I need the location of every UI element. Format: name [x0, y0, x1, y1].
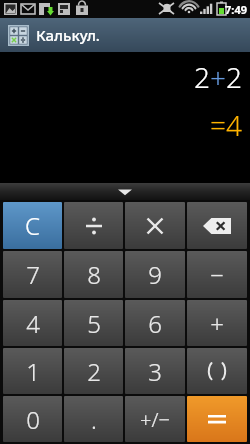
staticText: Калькул. — [36, 25, 100, 45]
staticText: − — [210, 258, 224, 291]
staticText: 3 — [148, 355, 162, 388]
button[interactable]: + — [187, 300, 247, 346]
button[interactable]: 1 — [3, 348, 62, 394]
button[interactable]: 4 — [3, 300, 62, 346]
staticText: 0 — [26, 403, 40, 436]
staticText: 6 — [148, 307, 162, 340]
staticText: 8 — [87, 258, 101, 291]
button[interactable]: +/− — [125, 396, 185, 442]
staticText: 7 — [26, 258, 40, 291]
button[interactable] — [187, 348, 247, 394]
button[interactable]: 5 — [64, 300, 123, 346]
staticText: 7:49 — [225, 2, 247, 17]
button[interactable]: . — [64, 396, 123, 442]
staticText: + — [210, 58, 226, 96]
button[interactable]: 2 — [64, 348, 123, 394]
staticText: 5 — [87, 307, 101, 340]
button[interactable]: Backspace — [187, 202, 247, 249]
staticText: C — [25, 209, 40, 242]
staticText: 9 — [148, 258, 162, 291]
staticText: 4 — [26, 307, 40, 340]
staticText: 2 — [194, 58, 210, 96]
button[interactable]: Collapse panel — [0, 183, 250, 200]
staticText: +/− — [140, 406, 170, 433]
staticText: . — [91, 403, 97, 436]
button[interactable] — [64, 202, 123, 249]
button[interactable]: C — [3, 202, 62, 249]
button[interactable]: 9 — [125, 251, 185, 298]
button[interactable] — [125, 202, 185, 249]
button[interactable]: 6 — [125, 300, 185, 346]
button[interactable]: 7 — [3, 251, 62, 298]
staticText: + — [210, 307, 224, 340]
button[interactable]: 0 — [3, 396, 62, 442]
staticText: 2 — [226, 58, 242, 96]
button[interactable] — [187, 396, 247, 442]
button[interactable]: 3 — [125, 348, 185, 394]
staticText: 1 — [26, 355, 40, 388]
button[interactable]: 8 — [64, 251, 123, 298]
staticText: =4 — [210, 106, 242, 144]
staticText: 2 — [87, 355, 101, 388]
button[interactable]: − — [187, 251, 247, 298]
